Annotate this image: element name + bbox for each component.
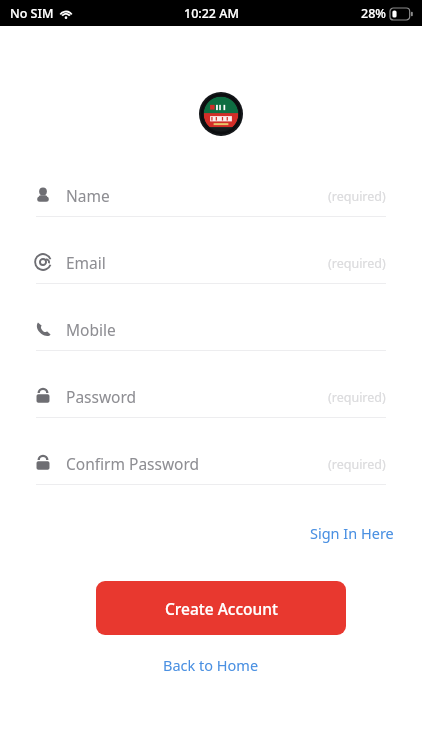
staticText: Name <box>66 185 110 206</box>
button[interactable]: Email <box>0 240 422 307</box>
staticText: No SIM <box>10 5 54 22</box>
button[interactable]: Mobile <box>0 307 422 374</box>
button[interactable]: Sign In Here <box>276 518 394 548</box>
staticText: Sign In Here <box>310 523 394 543</box>
button[interactable]: Password <box>0 374 422 441</box>
staticText: Password <box>66 386 137 407</box>
staticText: Confirm Password <box>66 453 200 474</box>
button[interactable]: Confirm Password <box>0 441 422 508</box>
staticText: Email <box>66 252 106 273</box>
staticText: Create Account <box>165 598 278 619</box>
staticText: (required) <box>328 255 386 272</box>
staticText: Back to Home <box>163 655 259 675</box>
button[interactable]: Back to Home <box>0 650 422 680</box>
button[interactable]: Create Account <box>96 581 346 635</box>
staticText: Mobile <box>66 319 116 340</box>
staticText: 10:22 AM <box>184 5 239 22</box>
button[interactable]: Name <box>0 173 422 240</box>
staticText: 28% <box>361 5 386 22</box>
staticText: (required) <box>328 389 386 406</box>
staticText: (required) <box>328 188 386 205</box>
staticText: (required) <box>328 456 386 473</box>
